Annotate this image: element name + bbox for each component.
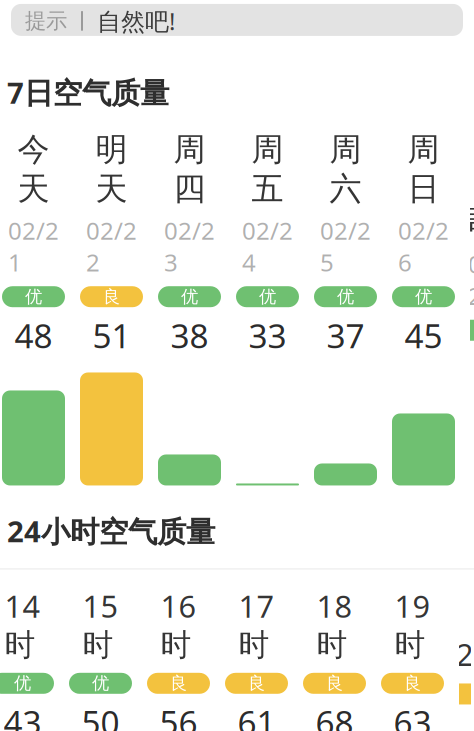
staticText: 45 [404, 313, 442, 357]
staticText: 02/25 [320, 214, 371, 278]
staticText: 02 [468, 248, 474, 312]
staticText: 56 [159, 700, 197, 731]
staticText: 周日 [407, 130, 439, 208]
staticText: 02/24 [242, 214, 293, 278]
staticText: 15时 [82, 585, 118, 664]
staticText: 明天 [95, 130, 127, 208]
staticText: 2 [456, 634, 474, 674]
staticText: 周四 [173, 130, 205, 208]
staticText: 优 [14, 673, 31, 694]
staticText: 提示 [25, 8, 67, 34]
staticText: 61 [237, 700, 275, 731]
staticText: 周六 [329, 130, 361, 208]
staticText: 周 [459, 203, 474, 242]
staticText: 优 [337, 286, 354, 307]
staticText: ‹ [8, 0, 21, 7]
staticText: 18时 [316, 585, 352, 664]
staticText: 50 [81, 700, 119, 731]
staticText: 周五 [251, 130, 283, 208]
staticText: 优 [259, 286, 276, 307]
staticText: 良 [248, 673, 265, 694]
staticText: 优 [415, 286, 432, 307]
staticText: 02/26 [398, 214, 449, 278]
staticText: 02/22 [86, 214, 137, 278]
staticText: 43 [3, 700, 41, 731]
staticText: 良 [404, 673, 421, 694]
staticText: 51 [92, 313, 130, 357]
staticText: 良 [170, 673, 187, 694]
staticText: 63 [393, 700, 431, 731]
staticText: 17时 [238, 585, 274, 664]
staticText: 优 [181, 286, 198, 307]
staticText: 02/23 [164, 214, 215, 278]
staticText: 良 [326, 673, 343, 694]
staticText: 优 [92, 673, 109, 694]
staticText: 自然吧! [97, 5, 175, 37]
staticText: 优 [25, 286, 42, 307]
staticText: 24小时空气质量 [7, 511, 215, 550]
staticText: 14时 [4, 585, 40, 664]
staticText: 68 [315, 700, 353, 731]
staticText: 48 [14, 313, 52, 357]
staticText: 今天 [17, 130, 49, 208]
staticText: 02/21 [8, 214, 59, 278]
staticText: 19时 [394, 585, 430, 664]
staticText: 7日空气质量 [7, 73, 169, 112]
staticText: 16时 [160, 585, 196, 664]
staticText: 37 [326, 313, 364, 357]
staticText: 33 [248, 313, 286, 357]
staticText: 38 [170, 313, 208, 357]
staticText: 良 [103, 286, 120, 307]
